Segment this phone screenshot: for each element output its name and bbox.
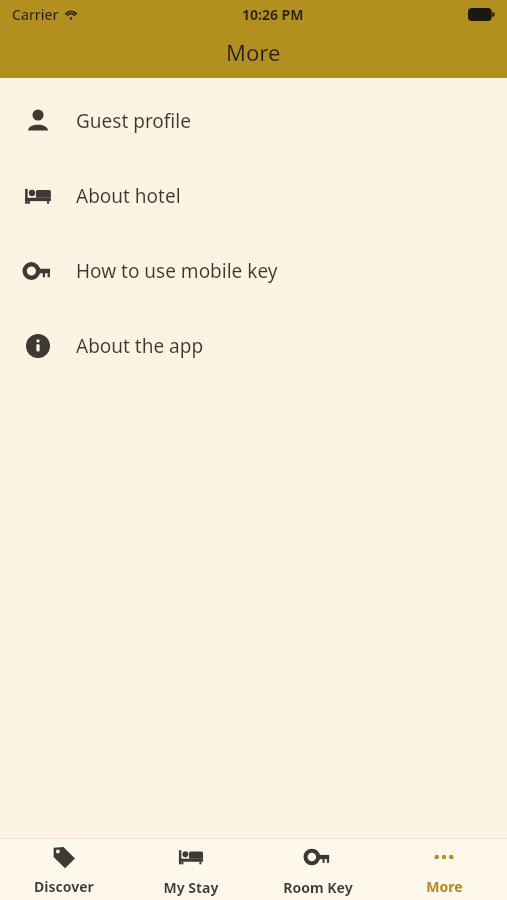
staticText: Carrier bbox=[12, 5, 59, 24]
staticText: More bbox=[426, 877, 463, 896]
staticText: About hotel bbox=[76, 183, 181, 209]
staticText: About the app bbox=[76, 333, 204, 359]
staticText: Guest profile bbox=[76, 108, 191, 134]
staticText: Discover bbox=[34, 877, 94, 896]
staticText: More bbox=[226, 37, 281, 67]
button[interactable]: About hotel bbox=[0, 158, 507, 233]
button[interactable]: About the app bbox=[0, 308, 507, 383]
button[interactable]: More bbox=[381, 839, 507, 900]
button[interactable]: Guest profile bbox=[0, 83, 507, 158]
staticText: How to use mobile key bbox=[76, 258, 278, 284]
button[interactable]: My Stay bbox=[127, 839, 254, 900]
staticText: 10:26 PM bbox=[242, 5, 304, 24]
button[interactable]: Room Key bbox=[254, 839, 381, 900]
staticText: My Stay bbox=[163, 878, 219, 897]
button[interactable]: How to use mobile key bbox=[0, 233, 507, 308]
staticText: Room Key bbox=[283, 878, 353, 897]
button[interactable]: Discover bbox=[0, 839, 127, 900]
